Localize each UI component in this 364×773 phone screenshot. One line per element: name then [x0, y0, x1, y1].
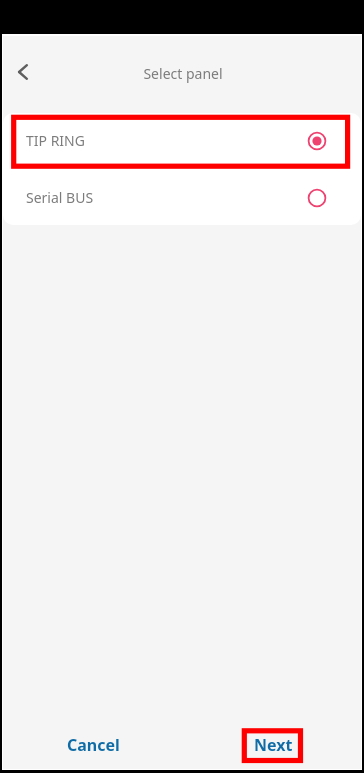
staticText: Serial BUS	[26, 188, 94, 207]
button[interactable]: Next	[236, 724, 311, 766]
button[interactable]: TIP RING	[3, 113, 361, 169]
staticText: Next	[254, 734, 293, 756]
staticText: TIP RING	[26, 131, 85, 150]
staticText: Cancel	[67, 734, 120, 756]
button[interactable]: Back	[6, 55, 40, 89]
button[interactable]: Cancel	[49, 724, 138, 766]
button[interactable]: Serial BUS	[3, 169, 361, 225]
staticText: Select panel	[143, 64, 223, 83]
